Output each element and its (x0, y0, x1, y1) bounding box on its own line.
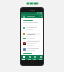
button[interactable]: Profile (38, 55, 43, 60)
button[interactable] (22, 41, 42, 46)
button[interactable] (22, 31, 42, 36)
button[interactable] (22, 26, 42, 30)
button[interactable] (26, 2, 39, 5)
button[interactable] (22, 19, 42, 25)
button[interactable]: Home (21, 55, 26, 60)
button[interactable] (26, 15, 39, 17)
button[interactable] (22, 52, 42, 55)
button[interactable] (22, 47, 42, 51)
button[interactable]: Saved (32, 55, 37, 60)
button[interactable]: Menu (22, 15, 25, 18)
button[interactable]: Search (27, 55, 32, 60)
button[interactable] (22, 37, 42, 40)
button[interactable]: More options (40, 15, 42, 17)
